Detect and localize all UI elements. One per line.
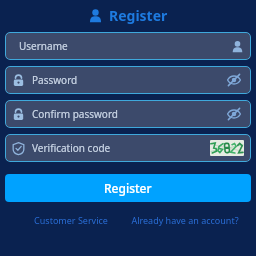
staticText: Register [104, 180, 152, 196]
staticText: Verification code [32, 141, 210, 155]
button[interactable]: Register [5, 174, 251, 202]
button[interactable]: Password [5, 66, 251, 94]
button[interactable]: Show confirm password [224, 104, 244, 124]
button[interactable]: Show password [224, 70, 244, 90]
button[interactable]: Refresh verification code [210, 140, 244, 156]
button[interactable]: Customer Service [14, 214, 128, 226]
staticText: Already have an account? [131, 214, 239, 226]
staticText: Register [109, 6, 168, 25]
staticText: Confirm password [32, 107, 224, 121]
button[interactable]: Confirm password [5, 100, 251, 128]
staticText: Username [19, 39, 231, 53]
button[interactable]: Already have an account? [128, 214, 242, 226]
staticText: Customer Service [34, 214, 108, 226]
button[interactable]: Verification code [5, 134, 251, 162]
button[interactable]: Username [5, 32, 251, 60]
staticText: Password [32, 73, 224, 87]
